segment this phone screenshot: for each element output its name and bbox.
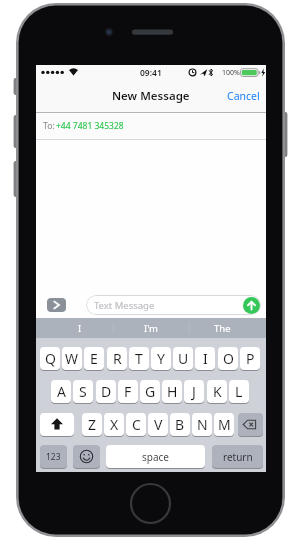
button[interactable]: [238, 413, 263, 436]
button[interactable]: B: [170, 413, 190, 436]
staticText: J: [192, 382, 196, 401]
button[interactable]: W: [62, 347, 82, 370]
staticText: N: [197, 415, 208, 434]
staticText: Z: [88, 415, 97, 434]
button[interactable]: D: [96, 380, 116, 403]
button[interactable]: H: [162, 380, 182, 403]
staticText: T: [135, 349, 143, 368]
staticText: Cancel: [227, 89, 260, 103]
button[interactable]: G: [140, 380, 160, 403]
button[interactable]: C: [126, 413, 146, 436]
button[interactable]: U: [173, 347, 193, 370]
staticText: space: [142, 450, 169, 464]
staticText: return: [223, 450, 253, 464]
staticText: E: [90, 349, 98, 368]
button[interactable]: I: [195, 347, 215, 370]
button[interactable]: I'm: [113, 318, 189, 338]
staticText: V: [154, 415, 163, 434]
staticText: 123: [46, 451, 61, 463]
staticText: S: [79, 382, 87, 401]
button[interactable]: return: [212, 445, 263, 468]
staticText: I: [203, 349, 208, 368]
button[interactable]: M: [214, 413, 234, 436]
button[interactable]: S: [73, 380, 93, 403]
staticText: D: [101, 382, 112, 401]
staticText: Text Message: [94, 299, 155, 312]
button[interactable]: O: [218, 347, 238, 370]
staticText: Y: [157, 349, 165, 368]
staticText: X: [110, 415, 119, 434]
staticText: F: [124, 382, 132, 401]
button[interactable]: 123: [40, 445, 67, 468]
staticText: M: [218, 415, 231, 434]
button[interactable]: The: [184, 318, 260, 338]
staticText: New Message: [112, 88, 190, 104]
button[interactable]: Z: [82, 413, 102, 436]
button[interactable]: F: [118, 380, 138, 403]
staticText: B: [175, 415, 185, 434]
staticText: I'm: [144, 322, 158, 335]
staticText: U: [178, 349, 189, 368]
staticText: H: [167, 382, 178, 401]
button[interactable]: L: [229, 380, 249, 403]
staticText: C: [132, 415, 141, 434]
button[interactable]: T: [129, 347, 149, 370]
staticText: The: [214, 322, 231, 335]
button[interactable]: Y: [151, 347, 171, 370]
staticText: P: [246, 349, 255, 368]
staticText: L: [235, 382, 243, 401]
staticText: 09:41: [140, 67, 162, 79]
staticText: I: [78, 322, 82, 335]
staticText: A: [57, 382, 66, 401]
button[interactable]: E: [84, 347, 104, 370]
button[interactable]: P: [240, 347, 260, 370]
button[interactable]: I: [42, 318, 118, 338]
button[interactable]: [243, 297, 260, 314]
button[interactable]: J: [184, 380, 204, 403]
button[interactable]: [40, 413, 74, 436]
staticText: +44 7481 345328: [56, 120, 124, 132]
button[interactable]: space: [106, 445, 205, 468]
staticText: R: [113, 349, 122, 368]
button[interactable]: N: [192, 413, 212, 436]
button[interactable]: Cancel: [220, 80, 260, 112]
button[interactable]: X: [104, 413, 124, 436]
staticText: G: [145, 382, 156, 401]
button[interactable]: V: [148, 413, 168, 436]
button[interactable]: [47, 298, 66, 312]
button[interactable]: R: [107, 347, 127, 370]
button[interactable]: Q: [40, 347, 60, 370]
staticText: K: [213, 382, 222, 401]
button[interactable]: K: [207, 380, 227, 403]
staticText: O: [223, 349, 234, 368]
staticText: Q: [45, 349, 56, 368]
button[interactable]: A: [51, 380, 71, 403]
staticText: W: [65, 349, 79, 368]
staticText: To:: [43, 120, 55, 132]
staticText: 100%: [222, 68, 240, 78]
button[interactable]: [73, 445, 100, 468]
button[interactable]: To:: [36, 113, 266, 138]
